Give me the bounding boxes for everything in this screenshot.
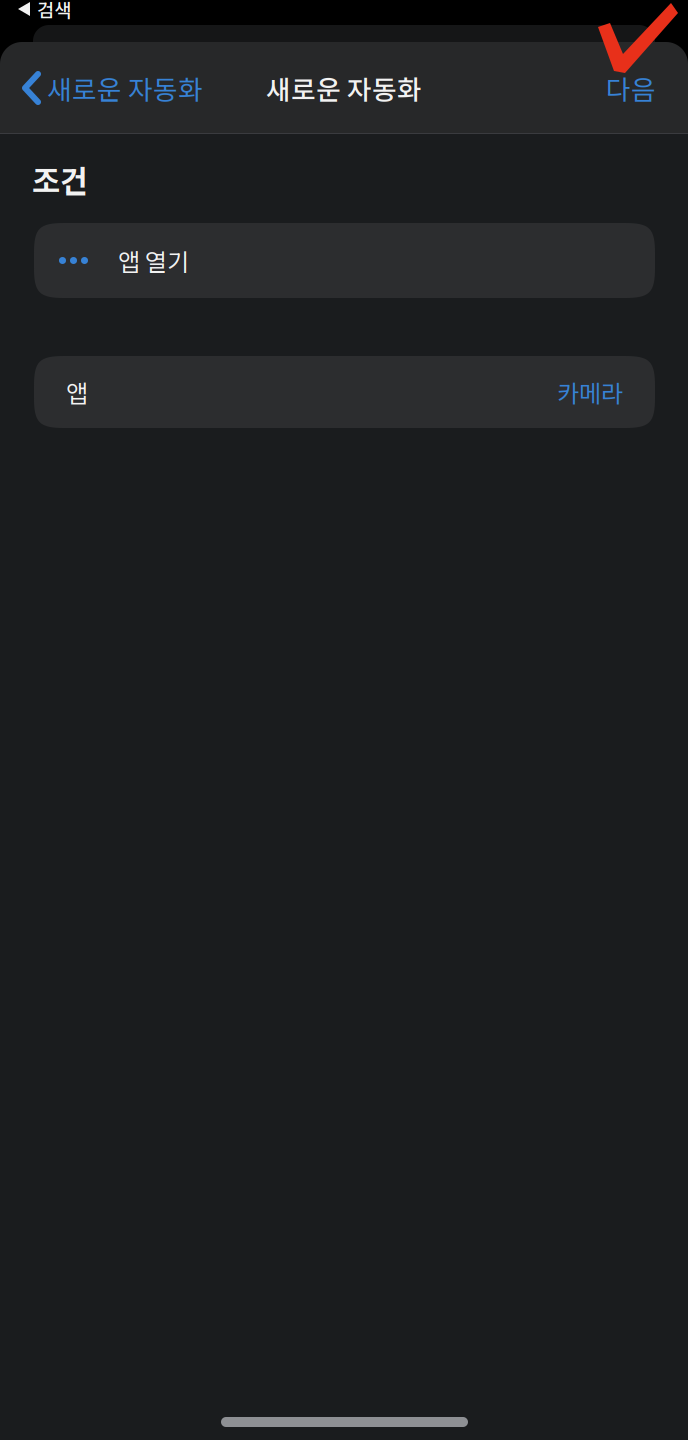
button[interactable]: 새로운 자동화 [0,42,203,134]
staticText: 카메라 [557,375,623,409]
staticText: 새로운 자동화 [266,69,422,107]
button[interactable]: 앱 [34,356,655,428]
staticText: 앱 [66,375,88,409]
button[interactable]: 검색 [0,0,140,20]
button[interactable]: 앱 열기 [34,223,655,298]
staticText: 앱 열기 [118,243,189,278]
staticText: 검색 [37,0,71,22]
button[interactable]: 다음 [606,42,688,134]
staticText: 새로운 자동화 [47,69,203,107]
staticText: 다음 [606,69,656,107]
staticText: 조건 [32,157,88,201]
